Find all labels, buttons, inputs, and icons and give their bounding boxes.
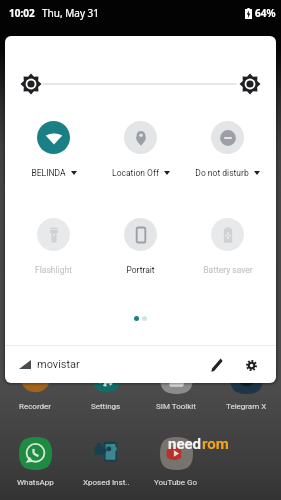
- button[interactable]: Flashlight: [10, 218, 97, 275]
- button[interactable]: SIM Toolkit: [141, 361, 211, 411]
- staticText: Flashlight: [35, 265, 72, 275]
- staticText: movistar: [37, 358, 80, 371]
- staticText: Do not disturb: [195, 168, 249, 178]
- button[interactable]: Portrait: [97, 218, 184, 275]
- button[interactable]: Xposed Inst..: [71, 437, 141, 487]
- button[interactable]: Settings: [71, 361, 141, 411]
- button[interactable]: Battery saver: [184, 218, 271, 275]
- staticText: need: [168, 435, 202, 453]
- staticText: Recorder: [19, 402, 52, 411]
- staticText: Telegram X: [226, 402, 267, 411]
- staticText: SIM Toolkit: [156, 402, 196, 411]
- staticText: WhatsApp: [17, 478, 54, 487]
- button[interactable]: WhatsApp: [0, 437, 71, 487]
- button[interactable]: Recorder: [0, 361, 71, 411]
- staticText: 64%: [255, 6, 276, 20]
- button[interactable]: Location Off: [97, 121, 184, 178]
- button[interactable]: BELINDA: [10, 121, 97, 178]
- staticText: Location Off: [112, 168, 159, 178]
- staticText: Battery saver: [203, 265, 253, 275]
- button[interactable]: Settings: [238, 352, 264, 378]
- staticText: Portrait: [126, 265, 155, 275]
- button[interactable]: Edit: [204, 352, 230, 378]
- staticText: YouTube Go: [154, 478, 198, 487]
- button[interactable]: Do not disturb: [184, 121, 271, 178]
- button[interactable]: Telegram X: [211, 361, 281, 411]
- staticText: 10:02: [9, 6, 35, 20]
- staticText: BELINDA: [31, 168, 66, 178]
- staticText: Xposed Inst..: [83, 478, 130, 487]
- staticText: Settings: [91, 402, 121, 411]
- button[interactable]: YouTube Go: [141, 437, 211, 487]
- staticText: Thu, May 31: [42, 6, 100, 20]
- staticText: rom: [202, 435, 229, 453]
